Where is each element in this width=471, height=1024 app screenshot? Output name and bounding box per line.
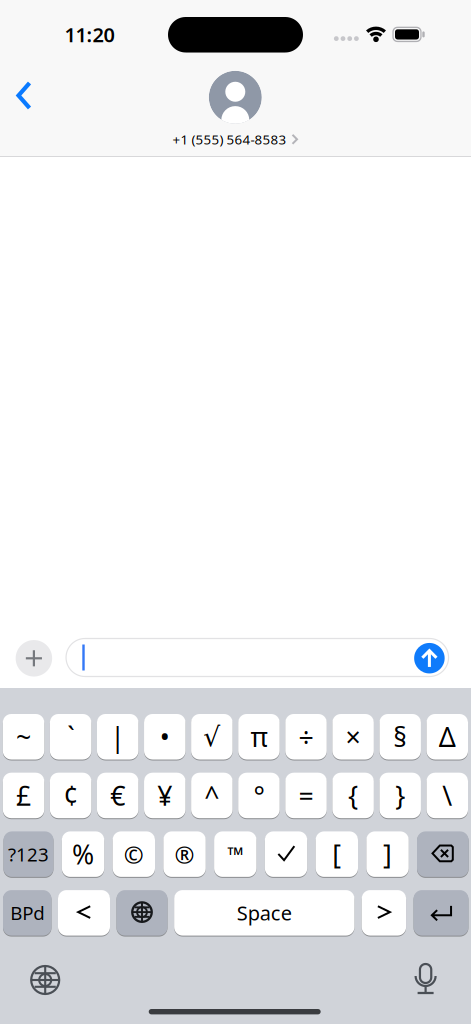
button[interactable]: Message text field [66,638,449,676]
button[interactable]: ¢ [50,772,91,819]
staticText: \ [442,778,452,813]
staticText: ¥ [157,778,172,813]
button[interactable]: { [332,772,374,819]
staticText: ^ [204,778,219,813]
button[interactable]: Return [414,889,468,936]
staticText: BPd [10,900,44,925]
staticText: € [110,778,125,813]
button[interactable]: × [332,713,374,760]
button[interactable]: ` [50,713,91,760]
button[interactable]: = [285,772,327,819]
button[interactable]: ° [238,772,280,819]
staticText: § [393,719,407,754]
staticText: 11:20 [64,21,114,48]
button[interactable]: Dictation [411,964,441,994]
button[interactable]: % [62,831,104,878]
staticText: { [348,778,358,813]
staticText: ?123 [8,842,49,867]
staticText: © [124,838,144,870]
button[interactable]: ^ [191,772,233,819]
staticText: = [298,778,313,813]
staticText: ™ [227,840,243,868]
button[interactable]: Space [174,889,354,936]
button[interactable]: √ [191,713,233,760]
button[interactable]: Delete [417,831,469,878]
staticText: ~ [16,719,31,754]
button[interactable]: Next keyboard [30,965,60,995]
button[interactable]: ?123 [3,831,53,878]
button[interactable]: Δ [426,713,468,760]
button[interactable]: • [144,713,185,760]
button[interactable]: § [379,713,421,760]
button[interactable]: Check mark [265,831,307,878]
button[interactable]: ¥ [144,772,185,819]
staticText: Space [237,900,292,926]
staticText: ] [383,836,392,872]
button[interactable]: Switch keyboard [116,889,167,936]
staticText: +1 (555) 564-8583 [172,130,286,148]
button[interactable]: ÷ [285,713,327,760]
staticText: ` [67,719,74,754]
button[interactable]: © [113,831,155,878]
button[interactable]: ™ [214,831,256,878]
staticText: ° [253,778,264,813]
staticText: | [110,719,125,754]
staticText: × [346,719,361,754]
button[interactable]: BPd [3,889,51,936]
button[interactable]: | [97,713,138,760]
button[interactable]: ~ [3,713,44,760]
button[interactable]: \ [426,772,468,819]
staticText: % [72,836,94,872]
staticText: √ [203,722,220,752]
button[interactable]: £ [3,772,44,819]
button[interactable]: π [238,713,280,760]
button[interactable]: } [379,772,421,819]
staticText: Δ [439,719,456,754]
staticText: } [395,778,405,813]
staticText: π [250,719,267,754]
staticText: • [160,719,170,754]
button[interactable]: Add attachment [16,640,52,676]
button[interactable]: Right angle bracket [362,889,406,936]
button[interactable]: ] [366,831,409,878]
staticText: [ [332,836,341,872]
button[interactable]: € [97,772,138,819]
button[interactable]: [ [316,831,358,878]
button[interactable]: Back [9,80,39,111]
button[interactable]: Left angle bracket [58,889,110,936]
staticText: £ [16,778,31,813]
staticText: ÷ [298,719,313,754]
button[interactable]: Contact photo [209,71,262,124]
button[interactable]: ® [163,831,206,878]
button[interactable]: +1 (555) 564-8583 [172,130,298,148]
staticText: ¢ [63,778,78,813]
staticText: ® [175,838,195,870]
button[interactable]: Send [414,643,445,673]
